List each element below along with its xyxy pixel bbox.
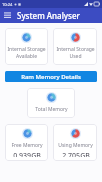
button[interactable]: Ram Memory Details xyxy=(5,71,97,82)
staticText: Using Memory xyxy=(58,142,93,149)
button[interactable]: Open navigation menu xyxy=(0,8,15,23)
staticText: 2.705GB xyxy=(62,151,90,157)
button[interactable]: Free Memory xyxy=(5,124,48,161)
staticText: 0.939GB xyxy=(13,151,41,157)
staticText: Internal Storage Available xyxy=(7,46,46,59)
button[interactable]: Using Memory xyxy=(53,124,97,161)
staticText: Ram Memory Details xyxy=(21,73,81,81)
staticText: 10:24 xyxy=(2,2,13,7)
button[interactable]: Internal Storage Available xyxy=(5,28,48,65)
staticText: Free Memory xyxy=(11,142,43,149)
staticText: Internal Storage Used xyxy=(56,46,95,59)
staticText: Total Memory xyxy=(35,106,68,113)
button[interactable]: Internal Storage Used xyxy=(53,28,97,65)
staticText: System Analyser xyxy=(17,10,80,21)
button[interactable]: Total Memory xyxy=(27,88,75,118)
